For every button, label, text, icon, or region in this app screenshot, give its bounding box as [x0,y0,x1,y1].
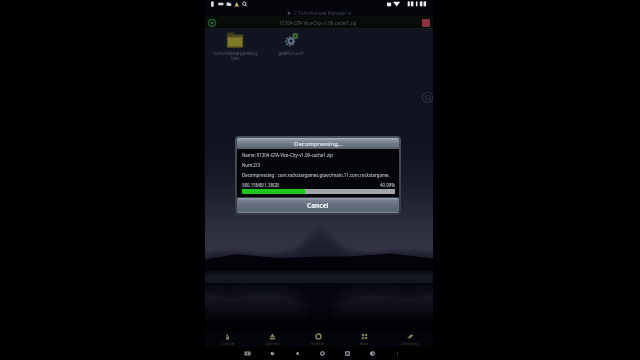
staticText: ⓘ Turbofunload Manager ⚙ [293,10,352,16]
button[interactable]: Directory [387,331,433,347]
button[interactable]: Back [292,348,303,359]
button[interactable]: Back [205,16,218,29]
button[interactable]: Screenshot [242,348,253,359]
staticText: 40.99% [380,182,395,188]
staticText: Directory [402,341,419,346]
staticText: Cancel [307,201,329,210]
button[interactable]: Volume [267,348,278,359]
button[interactable]: Cancel [237,198,399,213]
button[interactable]: com.rockstargames.g tavc [207,32,263,62]
staticText: Closed [222,341,234,346]
button[interactable]: Brightness [367,348,378,359]
button[interactable]: Opened [250,331,295,347]
button[interactable]: More [392,348,403,359]
staticText: New [360,341,368,346]
button[interactable]: Close [419,16,432,29]
staticText: 01304-GTA-Vice-City-v1.06-cache1.zip [280,20,357,26]
staticText: Decompressing... [294,140,343,148]
staticText: gdalfx.ru.url [278,50,304,56]
button[interactable]: Refresh [295,331,341,347]
staticText: Num:2/3 [242,162,260,168]
button[interactable]: Home [317,348,328,359]
staticText: Refresh [311,341,325,346]
button[interactable]: New [341,331,387,347]
button[interactable]: Recents [342,348,353,359]
button[interactable]: gdalfx.ru.url [263,32,319,56]
staticText: Decompressing : com.rockstargames.gtavc/… [242,172,390,178]
button[interactable]: Closed [205,331,250,347]
staticText: com.rockstargames.g tavc [213,50,258,62]
staticText: Opened [265,341,280,346]
staticText: Name: 01304-GTA-Vice-City-v1.06-cache1.z… [242,152,333,158]
staticText: 580.15MB/1.38GB [242,182,279,188]
